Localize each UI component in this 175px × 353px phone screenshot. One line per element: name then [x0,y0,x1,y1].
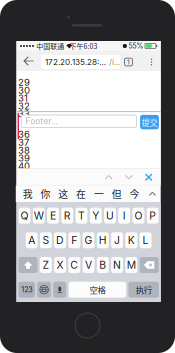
staticText: W [34,209,44,222]
button[interactable]: 我 [19,185,37,202]
button[interactable]: W [33,208,45,224]
staticText: V [85,259,92,271]
button[interactable] [18,257,38,273]
button[interactable]: 123 [18,282,35,298]
staticText: N [113,259,121,271]
button[interactable]: F [68,232,80,248]
staticText: E [50,209,56,222]
staticText: A [28,234,35,247]
button[interactable]: U [104,208,116,224]
staticText: G [85,234,93,247]
button[interactable]: Z [40,257,52,273]
staticText: 31 [18,92,28,104]
button[interactable]: 你 [37,185,54,202]
button[interactable]: 在 [72,185,90,202]
staticText: 今 [129,187,139,201]
staticText: 29 [18,76,30,88]
button[interactable]: G [83,232,94,248]
staticText: 40 [18,160,30,172]
staticText: P [149,209,156,222]
button[interactable]: 但 [108,185,126,202]
staticText: 在 [76,187,86,201]
staticText: 中国联通 [36,41,64,51]
button[interactable]: D [54,232,66,248]
button[interactable]: 空格 [69,282,126,298]
button[interactable]: P [147,208,159,224]
button[interactable]: V [83,257,94,273]
button[interactable]: A [26,232,38,248]
button[interactable] [140,257,159,273]
button[interactable]: N [111,257,123,273]
staticText: 39 [18,152,30,164]
button[interactable] [53,282,66,298]
button[interactable]: Y [90,208,102,224]
button[interactable] [37,282,51,298]
staticText: 32 [18,100,30,112]
button[interactable]: S [40,232,52,248]
button[interactable]: Done [139,169,159,185]
staticText: 1 [127,58,130,66]
staticText: U [106,209,114,222]
button[interactable]: E [47,208,59,224]
staticText: 一 [94,187,104,201]
button[interactable]: 今 [126,185,143,202]
staticText: X [57,259,64,271]
staticText: Q [20,209,28,222]
staticText: 提交 [141,116,157,128]
button[interactable]: Menu [144,52,158,72]
button[interactable]: L [140,232,151,248]
staticText: J [114,234,120,247]
button[interactable]: I [118,208,130,224]
staticText: 55% [128,42,143,50]
staticText: 但 [112,187,122,201]
button[interactable]: 这 [54,185,72,202]
staticText: 这 [58,187,68,201]
staticText: 37 [18,136,29,148]
staticText: D [56,234,64,247]
staticText: I [123,209,126,222]
staticText: 33 [18,108,30,120]
staticText: K [128,234,135,247]
staticText: Y [92,209,99,222]
button[interactable]: 执行 [128,282,159,298]
button[interactable]: X [54,257,66,273]
staticText: T [78,209,85,222]
button[interactable]: R [61,208,73,224]
staticText: 123 [21,285,32,294]
staticText: 下午6:03 [70,41,98,51]
staticText: 172.20.135.28:8848 [45,57,109,67]
staticText: 执行 [136,284,152,296]
staticText: /i... [109,57,120,67]
button[interactable]: More candidates [143,185,161,202]
staticText: O [134,209,142,222]
staticText: F [71,234,77,247]
staticText: B [99,259,106,271]
staticText: 36 [18,128,30,140]
button[interactable]: J [111,232,123,248]
button[interactable]: K [125,232,137,248]
button[interactable]: Next field [119,169,139,185]
staticText: 空格 [89,284,105,296]
button[interactable]: M [125,257,137,273]
staticText: 我 [23,187,33,201]
staticText: 38 [18,144,30,156]
button[interactable]: B [97,257,109,273]
button[interactable]: O [132,208,144,224]
button[interactable]: 一 [90,185,108,202]
staticText: Footer... [25,116,57,126]
staticText: M [127,259,136,271]
button[interactable]: Back [19,51,37,71]
staticText: R [64,209,71,222]
staticText: 你 [40,187,50,201]
button[interactable]: H [97,232,109,248]
button[interactable]: 提交 [140,115,159,129]
staticText: H [99,234,107,247]
button[interactable]: T [75,208,87,224]
button[interactable]: Q [18,208,30,224]
staticText: 30 [18,84,30,96]
button[interactable]: C [68,257,80,273]
button[interactable]: Previous field [99,169,119,185]
staticText: Z [42,259,49,271]
staticText: C [70,259,78,271]
button[interactable]: Tabs [120,52,136,72]
